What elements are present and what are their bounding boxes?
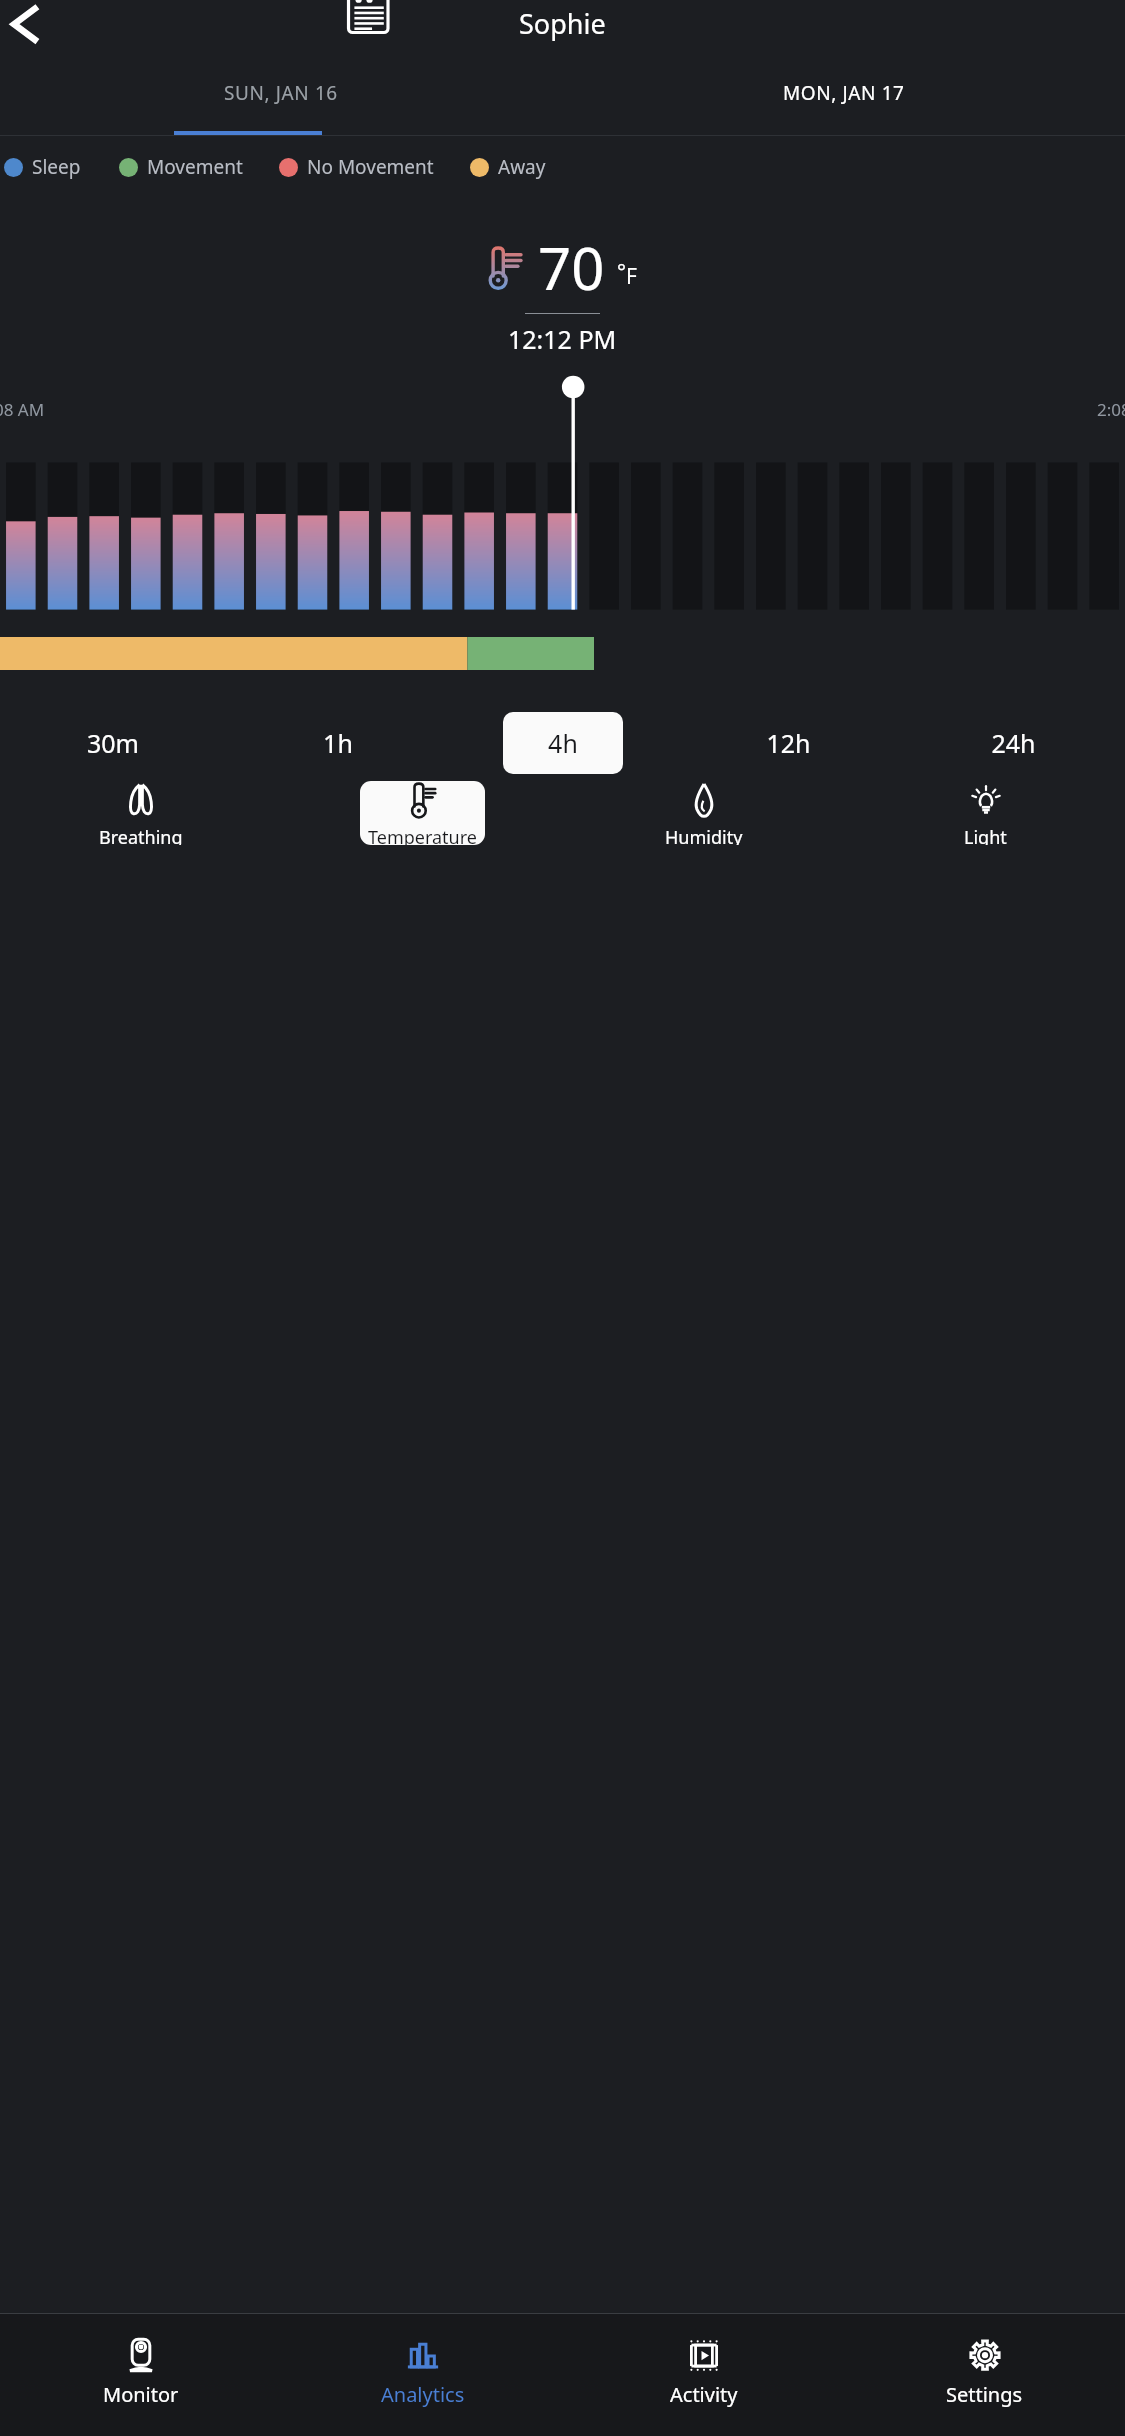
button[interactable]: Humidity	[649, 781, 759, 845]
staticText: MON, JAN 17	[783, 80, 905, 106]
button[interactable]: Report	[346, 0, 388, 35]
button[interactable]: Back	[0, 0, 56, 52]
staticText: 12:12 PM	[508, 322, 617, 356]
staticText: °	[617, 257, 626, 286]
staticText: 70	[538, 228, 605, 307]
button[interactable]: 1h	[278, 712, 398, 774]
button[interactable]: 24h	[953, 712, 1073, 774]
button[interactable]: Monitor	[0, 2314, 282, 2436]
button[interactable]: 4h	[503, 712, 623, 774]
staticText: 30m	[87, 726, 139, 760]
button[interactable]: Activity timeline	[0, 637, 1125, 670]
staticText: 4h	[548, 726, 578, 760]
staticText: Temperature	[368, 825, 477, 845]
button[interactable]: Breathing	[86, 781, 196, 845]
staticText: 12h	[766, 726, 811, 760]
staticText: Away	[498, 154, 546, 180]
staticText: F	[626, 262, 637, 291]
button[interactable]: Settings	[844, 2314, 1125, 2436]
button[interactable]: SUN, JAN 16	[0, 62, 562, 135]
staticText: Settings	[946, 2381, 1023, 2408]
staticText: 2:08	[1097, 398, 1125, 421]
button[interactable]: 12h	[728, 712, 848, 774]
staticText: Monitor	[103, 2381, 179, 2408]
button[interactable]: 30m	[53, 712, 173, 774]
staticText: 08 AM	[0, 398, 45, 421]
staticText: Light	[964, 825, 1007, 845]
staticText: SUN, JAN 16	[224, 80, 338, 106]
staticText: 24h	[991, 726, 1036, 760]
staticText: Sleep	[32, 154, 81, 180]
staticText: Movement	[147, 154, 243, 180]
button[interactable]: MON, JAN 17	[562, 62, 1125, 135]
staticText: Humidity	[665, 825, 743, 845]
button[interactable]: Light	[930, 781, 1040, 845]
button[interactable]: Temperature chart	[0, 372, 1125, 612]
staticText: No Movement	[307, 154, 434, 180]
staticText: Analytics	[381, 2381, 465, 2408]
button[interactable]: Activity	[563, 2314, 844, 2436]
staticText: 1h	[323, 726, 353, 760]
staticText: Sophie	[519, 5, 606, 42]
button[interactable]: Temperature	[360, 781, 485, 845]
button[interactable]: Analytics	[282, 2314, 563, 2436]
staticText: Breathing	[99, 825, 183, 845]
staticText: Activity	[670, 2381, 738, 2408]
